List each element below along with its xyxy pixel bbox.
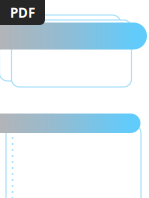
staticText: PDF	[10, 4, 35, 21]
button[interactable]: Previous document	[0, 0, 121, 66]
button[interactable]: Next document	[0, 0, 135, 80]
button[interactable]: PDF document	[0, 0, 120, 67]
button[interactable]: PDF	[0, 0, 45, 25]
